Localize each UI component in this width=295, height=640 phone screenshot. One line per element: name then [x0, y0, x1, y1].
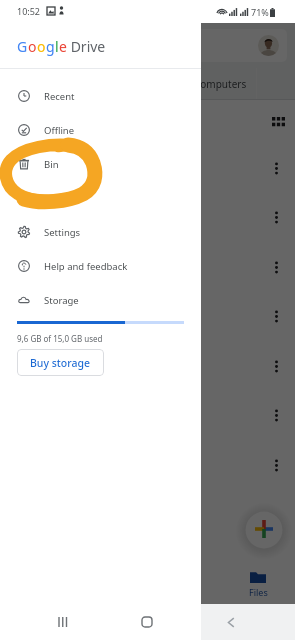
button[interactable]: Offline: [0, 113, 201, 147]
button[interactable]: Buy storage: [17, 349, 104, 376]
staticText: Storage: [44, 294, 79, 307]
button[interactable]: Settings: [0, 215, 201, 249]
button[interactable]: Account: [258, 35, 279, 56]
button[interactable]: Search in Drive: [8, 29, 287, 62]
button[interactable]: Storage: [0, 283, 201, 317]
button[interactable]: More options: [275, 311, 278, 322]
button[interactable]: Back: [216, 607, 246, 637]
staticText: o: [28, 37, 37, 56]
button[interactable]: Create new: [238, 504, 290, 556]
button[interactable]: Bin: [0, 147, 201, 181]
button[interactable]: More options: [275, 361, 278, 372]
staticText: e: [59, 37, 67, 56]
button[interactable]: More options: [275, 410, 278, 421]
staticText: Bin: [44, 158, 59, 171]
button[interactable]: Recent: [0, 79, 201, 113]
button[interactable]: Recents: [47, 607, 77, 637]
staticText: l: [55, 37, 59, 56]
button[interactable]: Change layout: [272, 117, 285, 126]
button[interactable]: Backups: [0, 181, 201, 215]
staticText: 10:52: [17, 5, 41, 17]
button[interactable]: More options: [275, 460, 278, 471]
staticText: Backups: [44, 192, 82, 205]
staticText: Files: [249, 586, 268, 598]
button[interactable]: Help and feedback: [0, 249, 201, 283]
staticText: 71%: [251, 6, 269, 18]
staticText: Offline: [44, 124, 75, 137]
staticText: Recent: [44, 90, 75, 103]
button[interactable]: Home: [132, 607, 162, 637]
staticText: Computers: [194, 77, 247, 91]
staticText: Settings: [44, 226, 81, 239]
staticText: o: [37, 37, 46, 56]
button[interactable]: More options: [275, 262, 278, 273]
button[interactable]: Files tab: [238, 571, 278, 598]
staticText: Search in Drive: [42, 38, 120, 53]
button[interactable]: More options: [275, 163, 278, 174]
staticText: Drive: [67, 37, 106, 56]
staticText: Help and feedback: [44, 260, 128, 273]
staticText: g: [46, 37, 55, 56]
button[interactable]: More options: [275, 212, 278, 223]
staticText: 9,6 GB of 15,0 GB used: [17, 333, 103, 344]
staticText: G: [17, 37, 28, 56]
staticText: Buy storage: [30, 356, 91, 370]
